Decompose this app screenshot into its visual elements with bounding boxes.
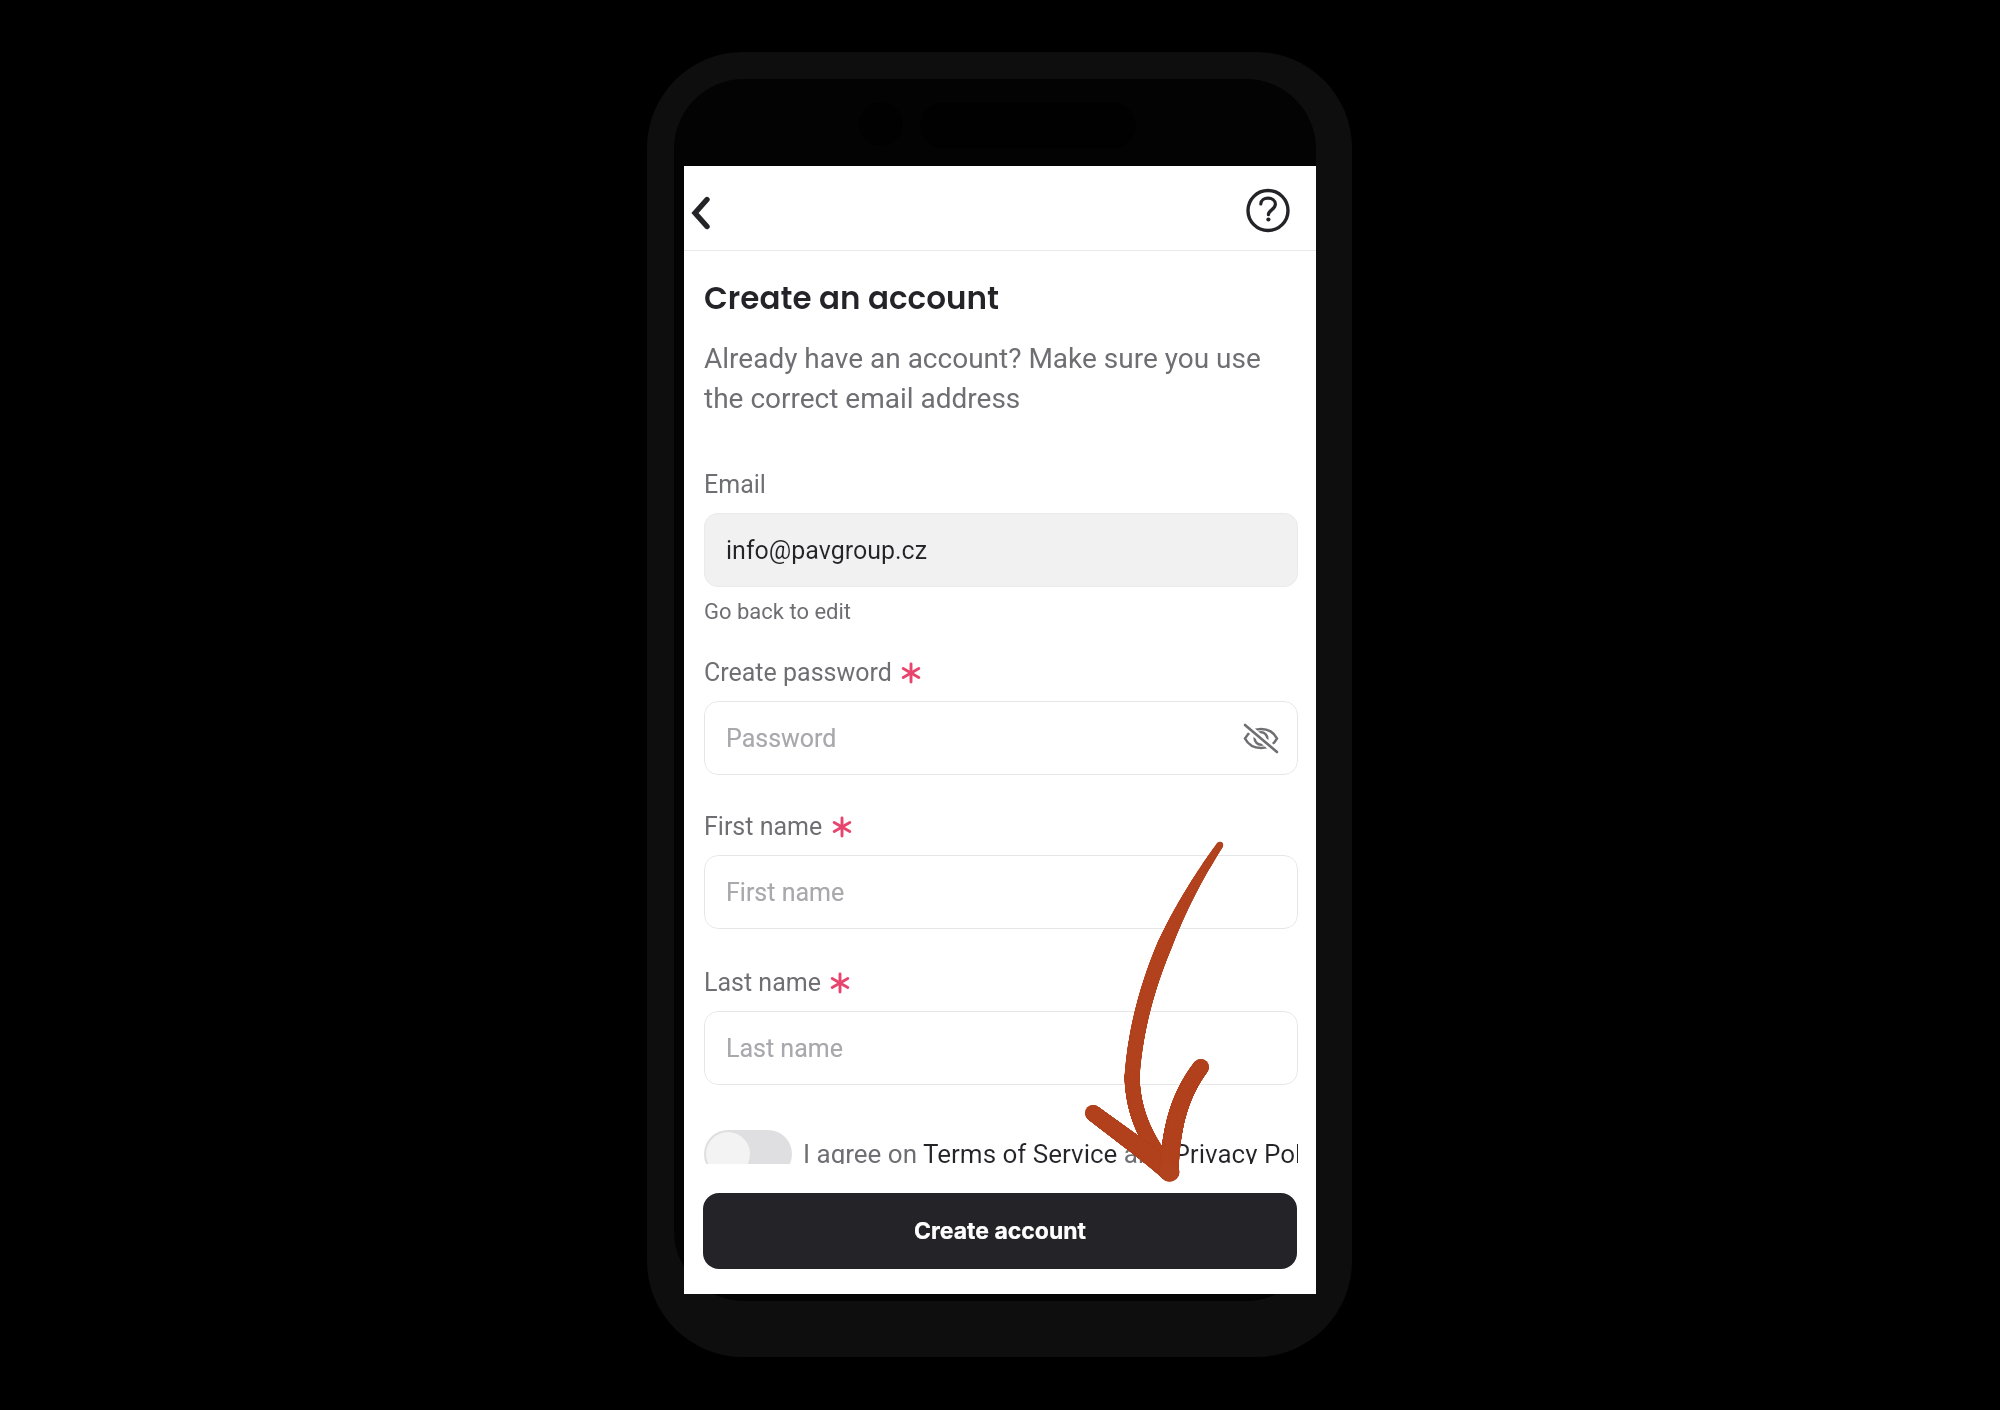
staticText: Email <box>704 470 766 499</box>
staticText: Password <box>726 724 837 753</box>
button[interactable]: info@pavgroup.cz <box>704 513 1298 587</box>
staticText: Last name <box>726 1034 843 1063</box>
staticText: I agree on Terms of Service and Privacy … <box>803 1139 1298 1169</box>
staticText: info@pavgroup.cz <box>726 536 928 565</box>
staticText: Create account <box>914 1217 1087 1245</box>
staticText: Already have an account? Make sure you u… <box>704 342 1298 415</box>
staticText: First name <box>704 812 823 841</box>
button[interactable]: Create account <box>703 1193 1297 1269</box>
button[interactable]: Password <box>704 701 1298 775</box>
button[interactable]: Back <box>686 183 738 235</box>
button[interactable]: Help <box>1243 184 1293 234</box>
staticText: Last name <box>704 968 821 997</box>
staticText: First name <box>726 878 845 907</box>
button[interactable]: First name <box>704 855 1298 929</box>
button[interactable]: I agree on Terms of Service and Privacy … <box>704 1130 1298 1178</box>
button[interactable]: Go back to edit <box>704 599 852 625</box>
button[interactable]: Last name <box>704 1011 1298 1085</box>
staticText: Create an account <box>704 276 1000 319</box>
staticText: Create password <box>704 658 892 687</box>
button[interactable]: Show password <box>1238 715 1284 761</box>
